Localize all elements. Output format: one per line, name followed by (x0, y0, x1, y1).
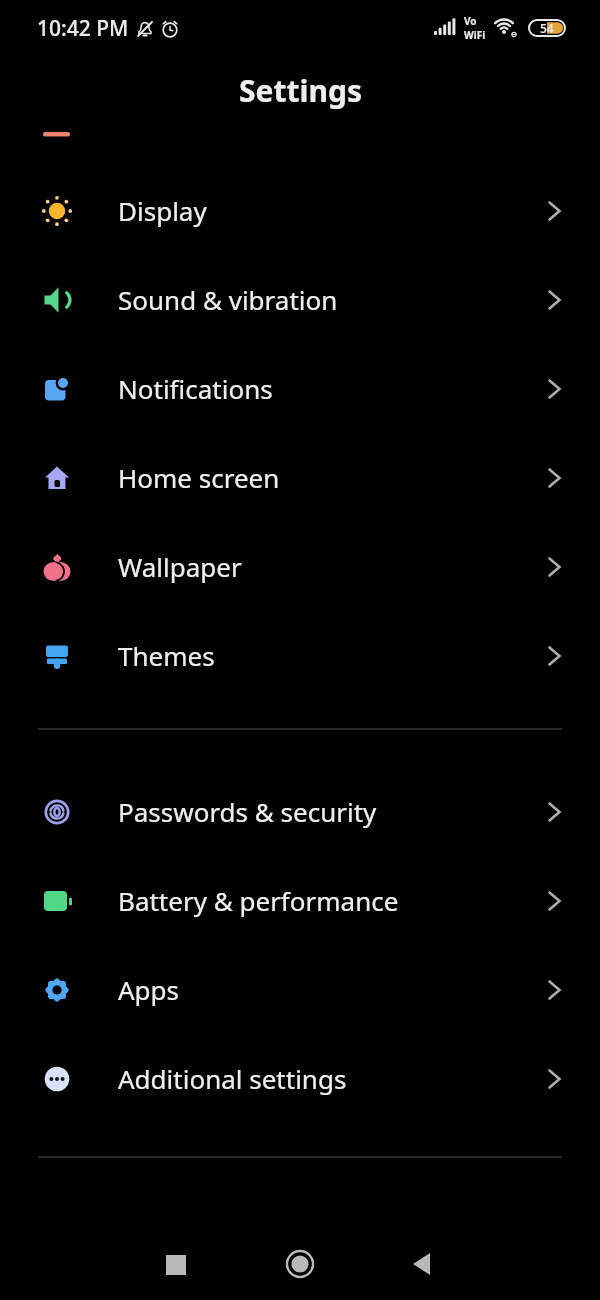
staticText: Themes (118, 638, 215, 673)
staticText: Notifications (118, 371, 273, 406)
button[interactable] (156, 1245, 196, 1285)
staticText: 10:42 PM (37, 14, 129, 43)
button[interactable]: Notifications (0, 344, 600, 433)
staticText: WiFi (464, 28, 486, 42)
button[interactable] (280, 1244, 320, 1284)
staticText: Vo (464, 14, 477, 28)
staticText: Settings (239, 70, 362, 111)
button[interactable] (402, 1244, 442, 1284)
staticText: Passwords & security (118, 794, 377, 829)
staticText: Home screen (118, 460, 280, 495)
staticText: Display (118, 193, 207, 228)
staticText: Apps (118, 972, 180, 1007)
button[interactable]: Passwords & security (0, 767, 600, 856)
staticText: Wallpaper (118, 549, 242, 584)
staticText: 54 (540, 20, 554, 36)
button[interactable]: Display (0, 166, 600, 255)
staticText: Battery & performance (118, 883, 399, 918)
button[interactable]: Apps (0, 945, 600, 1034)
button[interactable]: Wallpaper (0, 522, 600, 611)
staticText: Additional settings (118, 1061, 347, 1096)
button[interactable]: Additional settings (0, 1034, 600, 1123)
button[interactable]: Themes (0, 611, 600, 700)
button[interactable]: Sound & vibration (0, 255, 600, 344)
staticText: Sound & vibration (118, 282, 338, 317)
button[interactable]: Battery & performance (0, 856, 600, 945)
button[interactable]: Home screen (0, 433, 600, 522)
